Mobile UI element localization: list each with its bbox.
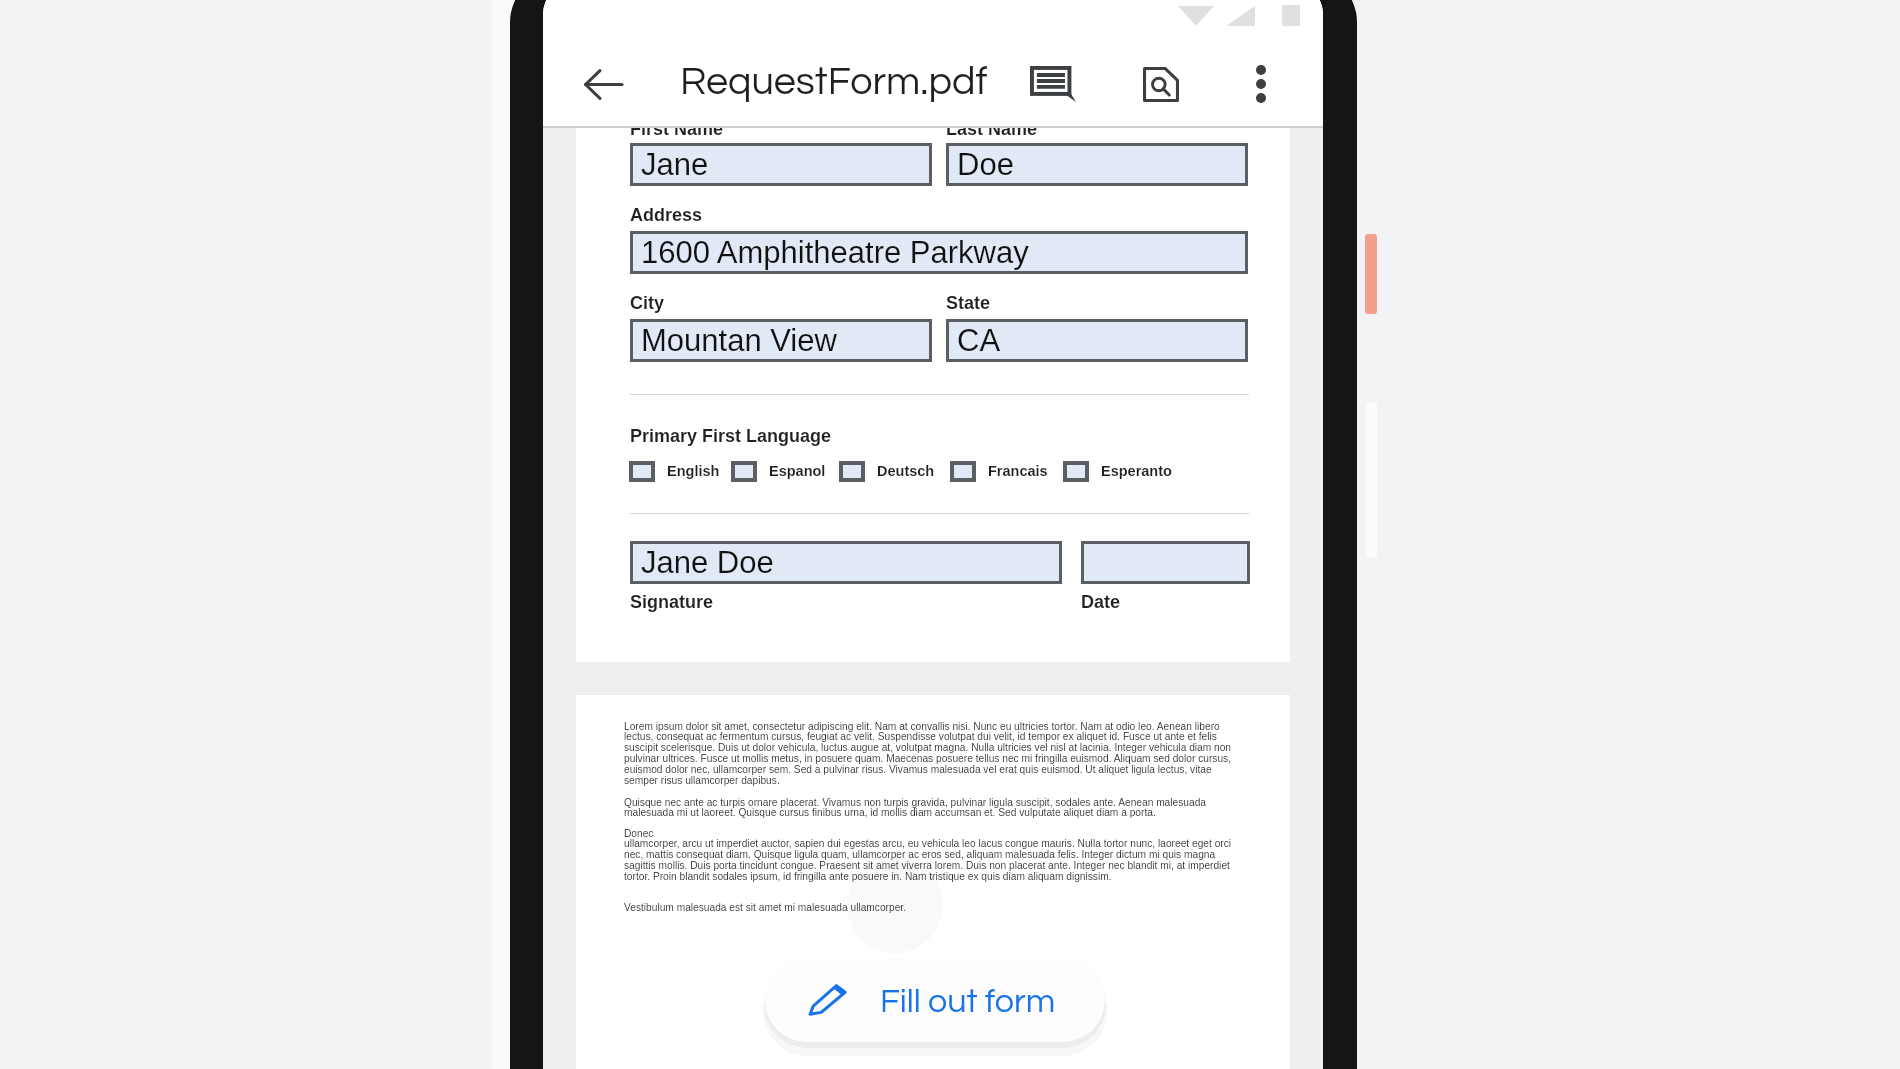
staticText: English bbox=[667, 463, 720, 479]
staticText: RequestForm.pdf bbox=[680, 62, 988, 103]
staticText: State bbox=[946, 293, 991, 313]
button[interactable]: Deutsch bbox=[839, 460, 935, 482]
button[interactable]: English bbox=[629, 460, 720, 482]
staticText: Jane Doe bbox=[641, 545, 774, 580]
staticText: Date bbox=[1081, 592, 1121, 612]
staticText: Vestibulum malesuada est sit amet mi mal… bbox=[624, 902, 906, 913]
button[interactable]: Comments bbox=[1023, 54, 1083, 114]
staticText: Francais bbox=[988, 463, 1048, 479]
staticText: First Name bbox=[630, 119, 724, 139]
staticText: CA bbox=[957, 323, 1001, 358]
button[interactable]: More options bbox=[1231, 54, 1291, 114]
staticText: Signature bbox=[630, 592, 714, 612]
staticText: Address bbox=[630, 205, 703, 225]
staticText: 1600 Amphitheatre Parkway bbox=[641, 235, 1029, 270]
button[interactable]: Fill out form bbox=[765, 958, 1105, 1042]
button[interactable]: Esperanto bbox=[1063, 460, 1172, 482]
staticText: Mountan View bbox=[641, 323, 837, 358]
button[interactable]: Back bbox=[573, 54, 633, 114]
staticText: Doe bbox=[957, 147, 1014, 182]
staticText: Donec ullamcorper, arcu ut imperdiet auc… bbox=[624, 828, 1245, 883]
staticText: Fill out form bbox=[880, 984, 1056, 1019]
staticText: Jane bbox=[641, 147, 709, 182]
staticText: Deutsch bbox=[877, 463, 935, 479]
button[interactable]: Francais bbox=[950, 460, 1048, 482]
staticText: Espanol bbox=[769, 463, 826, 479]
staticText: Last Name bbox=[946, 119, 1038, 139]
staticText: Quisque nec ante ac turpis ornare placer… bbox=[624, 797, 1245, 819]
staticText: Primary First Language bbox=[630, 426, 832, 446]
staticText: Lorem ipsum dolor sit amet, consectetur … bbox=[624, 721, 1245, 787]
button[interactable]: Espanol bbox=[731, 460, 826, 482]
staticText: Esperanto bbox=[1101, 463, 1172, 479]
button[interactable]: Search in document bbox=[1131, 54, 1191, 114]
staticText: City bbox=[630, 293, 665, 313]
